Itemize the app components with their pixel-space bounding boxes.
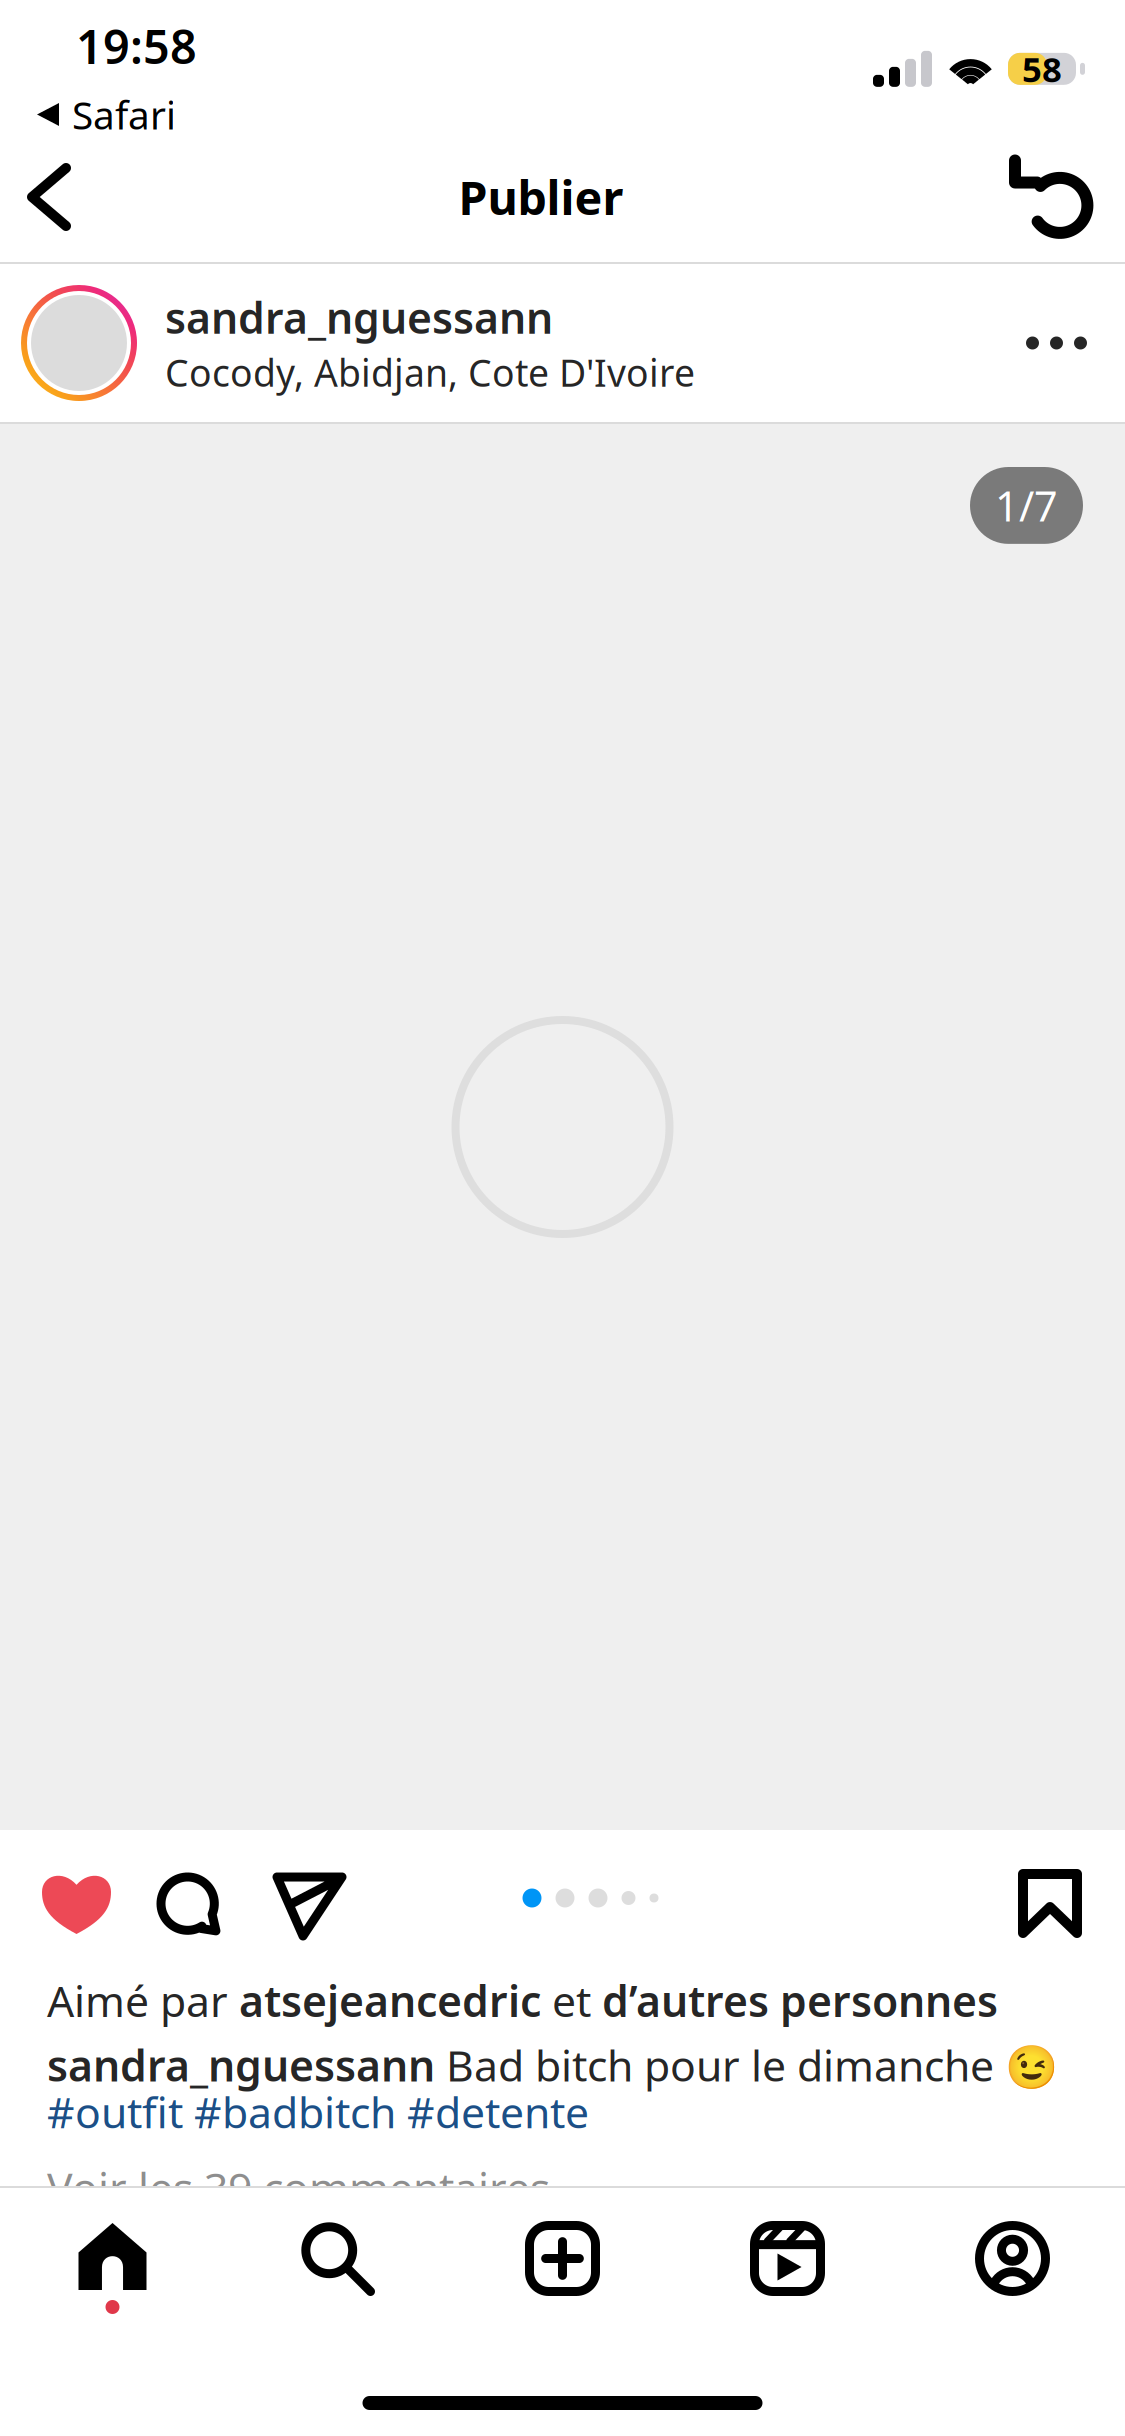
button[interactable]: Share xyxy=(253,1830,372,1948)
staticText: sandra_nguessann Bad bitch pour le diman… xyxy=(47,2037,1058,2093)
staticText: Voir les 39 commentaires xyxy=(47,2159,550,2216)
staticText: sandra_nguessann xyxy=(165,289,553,346)
staticText: 19:58 xyxy=(76,15,197,77)
button[interactable]: Home xyxy=(0,2188,225,2314)
button[interactable]: Safari xyxy=(37,77,176,140)
button[interactable]: More options xyxy=(988,290,1125,395)
button[interactable]: Save xyxy=(993,1830,1105,1948)
staticText: 1/7 xyxy=(995,478,1058,533)
button[interactable]: Comment xyxy=(133,1830,253,1948)
staticText: 58 xyxy=(1022,46,1062,92)
staticText: #outfit #badbitch #detente xyxy=(47,2083,589,2140)
staticText: Cocody, Abidjan, Cote D'Ivoire xyxy=(165,347,695,397)
button[interactable]: Refresh xyxy=(976,131,1125,262)
button[interactable]: Create xyxy=(450,2188,675,2314)
button[interactable]: Search xyxy=(225,2188,450,2314)
button[interactable]: Like xyxy=(20,1830,133,1948)
staticText: Aimé par atsejeancedric et d’autres pers… xyxy=(47,1972,998,2029)
button[interactable]: Reels xyxy=(675,2188,900,2314)
button[interactable]: Profile xyxy=(900,2188,1125,2314)
button[interactable]: Back xyxy=(0,138,106,256)
staticText: Safari xyxy=(72,89,176,140)
staticText: Publier xyxy=(458,166,623,228)
